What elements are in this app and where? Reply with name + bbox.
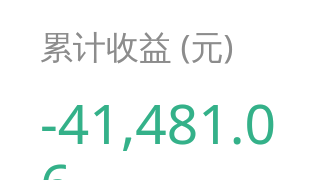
- staticText: 累计收益 (元): [40, 24, 234, 69]
- staticText: -41,481.06: [40, 85, 305, 180]
- button[interactable]: 累计收益 (元): [0, 0, 321, 180]
